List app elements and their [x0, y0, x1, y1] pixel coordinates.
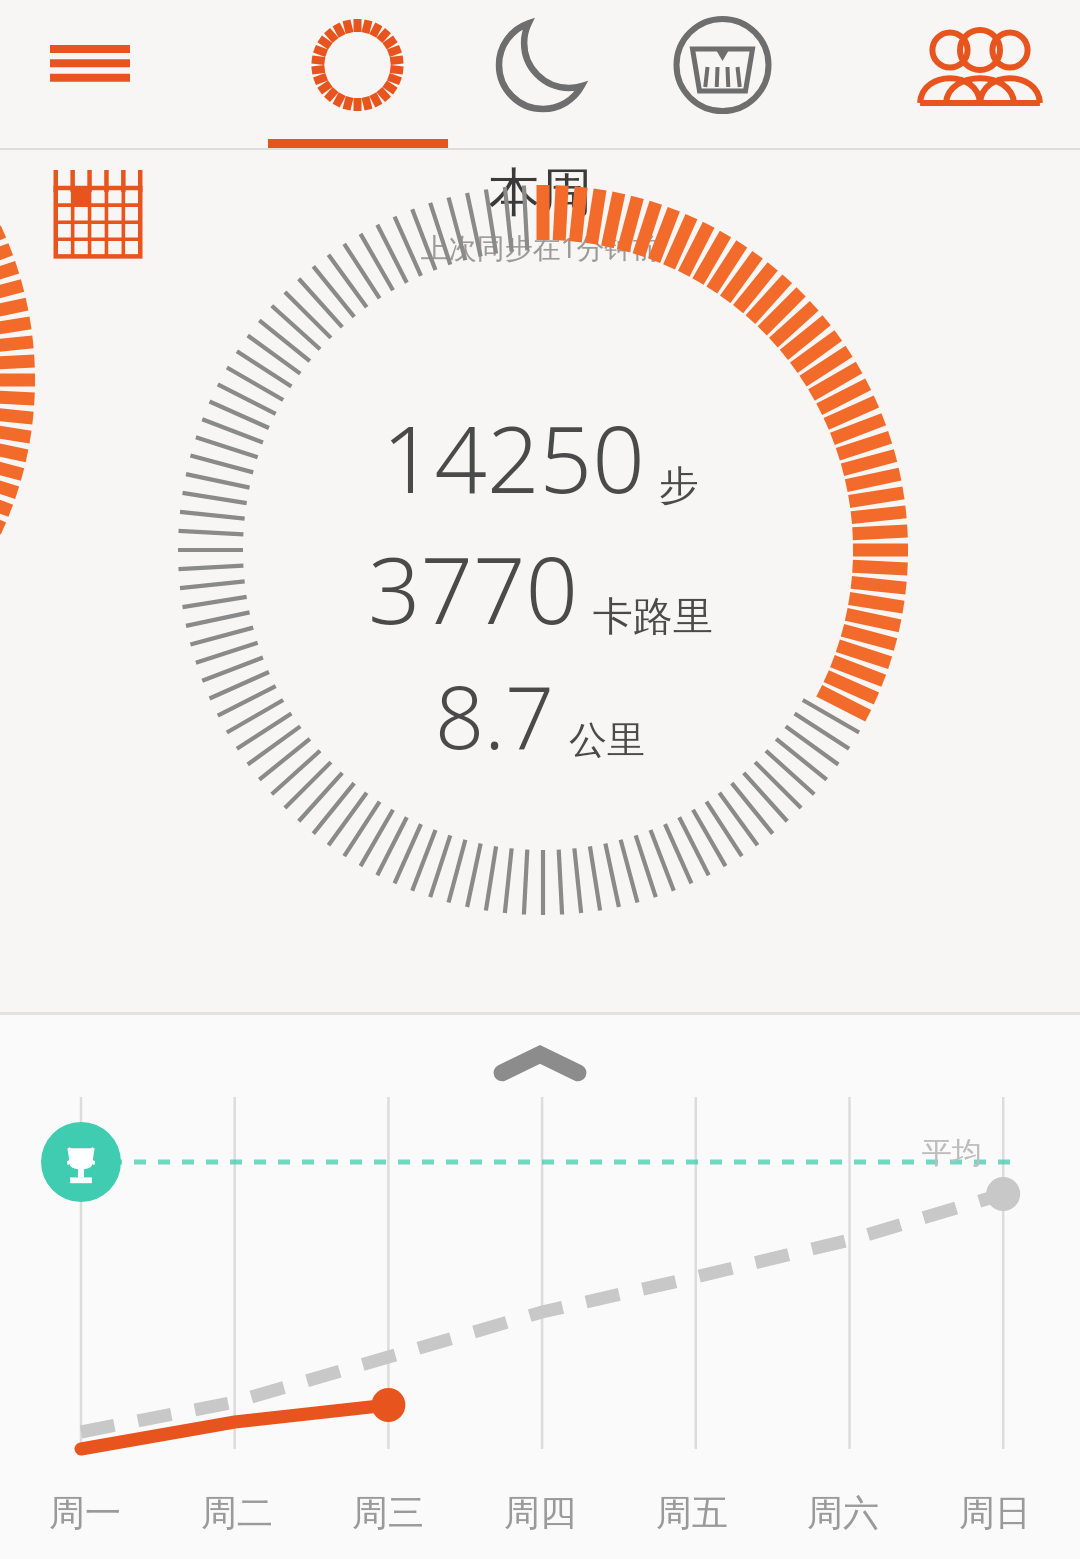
button[interactable]: Goal achieved [47, 1130, 115, 1198]
staticText: 平均 [922, 1134, 982, 1172]
button[interactable]: Expand [490, 1044, 590, 1084]
staticText: 周六 [807, 1490, 879, 1535]
staticText: 上次同步在1分钟前 [420, 228, 661, 266]
staticText: 公里 [569, 716, 645, 764]
button[interactable]: Menu [20, 18, 140, 102]
button[interactable]: 周日 [930, 1490, 1060, 1535]
staticText: 周日 [959, 1490, 1031, 1535]
staticText: 8.7 [435, 657, 555, 774]
staticText: 14250 [382, 395, 645, 520]
staticText: 本周 [488, 160, 592, 226]
button[interactable]: 周五 [627, 1490, 757, 1535]
button[interactable]: 周一 [20, 1490, 150, 1535]
staticText: 周二 [201, 1490, 273, 1535]
button[interactable]: Sleep [470, 10, 615, 150]
staticText: 步 [659, 460, 699, 510]
button[interactable]: 周六 [778, 1490, 908, 1535]
staticText: 周三 [352, 1490, 424, 1535]
button[interactable]: 周三 [323, 1490, 453, 1535]
button[interactable]: Activity [285, 10, 430, 150]
button[interactable]: Calendar [50, 170, 146, 260]
staticText: 卡路里 [593, 591, 713, 641]
button[interactable]: 周二 [172, 1490, 302, 1535]
button[interactable]: Weight [650, 10, 795, 150]
button[interactable]: Friends [900, 10, 1060, 150]
staticText: 周四 [504, 1490, 576, 1535]
staticText: 周五 [656, 1490, 728, 1535]
staticText: 周一 [49, 1490, 121, 1535]
button[interactable]: 周四 [475, 1490, 605, 1535]
staticText: 3770 [368, 526, 579, 651]
